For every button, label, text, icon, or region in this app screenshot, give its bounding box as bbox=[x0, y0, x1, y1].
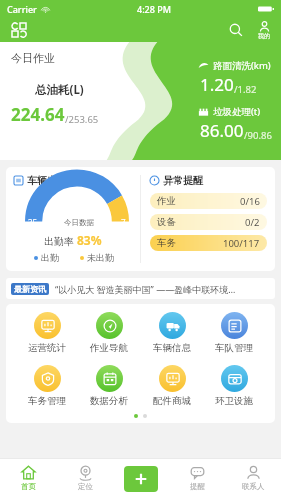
staticText: 提醒 bbox=[190, 482, 205, 491]
staticText: 车辆出勤 bbox=[27, 174, 67, 187]
staticText: 垃圾处理(t) bbox=[213, 105, 261, 118]
button[interactable]: 车务管理 bbox=[25, 364, 69, 408]
staticText: 未出勤 bbox=[87, 252, 114, 263]
staticText: 联系人 bbox=[242, 482, 265, 491]
staticText: 0/2 bbox=[245, 216, 260, 229]
button[interactable]: 作业导航 bbox=[87, 311, 131, 355]
staticText: 定位 bbox=[78, 482, 93, 491]
button[interactable]: 运营统计 bbox=[25, 311, 69, 355]
button[interactable]: Logo bbox=[9, 20, 29, 40]
staticText: 今日数据 bbox=[64, 218, 94, 227]
staticText: /1.82 bbox=[234, 83, 257, 96]
staticText: 7 bbox=[121, 217, 126, 228]
staticText: 配件商城 bbox=[153, 395, 191, 407]
staticText: 86.00 bbox=[200, 119, 244, 142]
button[interactable]: 首页 bbox=[0, 458, 57, 500]
staticText: 车辆信息 bbox=[153, 342, 191, 354]
staticText: “以小见大 智造美丽中国” ——盈峰中联环境… bbox=[55, 283, 236, 295]
staticText: 今日作业 bbox=[11, 51, 55, 65]
button[interactable]: 车队管理 bbox=[212, 311, 256, 355]
staticText: 环卫设施 bbox=[215, 395, 253, 407]
staticText: 设备 bbox=[157, 216, 176, 228]
staticText: 数据分析 bbox=[90, 395, 128, 407]
button[interactable]: 作业 bbox=[150, 193, 267, 209]
staticText: 首页 bbox=[21, 482, 36, 491]
button[interactable]: 提醒 bbox=[169, 458, 225, 500]
staticText: 4:28 PM bbox=[137, 3, 171, 15]
staticText: 异常提醒 bbox=[163, 174, 203, 187]
button[interactable]: 设备 bbox=[150, 214, 267, 230]
button[interactable]: 车务 bbox=[150, 235, 267, 251]
staticText: 0/16 bbox=[240, 195, 260, 208]
staticText: 224.64 bbox=[11, 103, 65, 126]
staticText: 1.20 bbox=[200, 73, 234, 96]
staticText: 出勤率 bbox=[44, 234, 77, 248]
button[interactable]: 联系人 bbox=[225, 458, 281, 500]
staticText: 我的 bbox=[258, 32, 270, 40]
staticText: 运营统计 bbox=[28, 342, 66, 354]
button[interactable]: 车辆信息 bbox=[150, 311, 194, 355]
button[interactable]: Add bbox=[124, 466, 158, 492]
staticText: 总油耗(L) bbox=[35, 82, 84, 98]
staticText: Carrier bbox=[7, 3, 37, 15]
button[interactable]: 环卫设施 bbox=[212, 364, 256, 408]
button[interactable]: 数据分析 bbox=[87, 364, 131, 408]
staticText: /253.65 bbox=[65, 113, 99, 126]
button[interactable]: My profile bbox=[256, 21, 272, 40]
staticText: 作业导航 bbox=[90, 342, 128, 354]
staticText: 车务管理 bbox=[28, 395, 66, 407]
staticText: 作业 bbox=[157, 195, 176, 207]
staticText: 出勤 bbox=[41, 252, 59, 263]
button[interactable]: Search bbox=[227, 21, 245, 39]
staticText: 100/117 bbox=[223, 237, 260, 250]
button[interactable]: 配件商城 bbox=[150, 364, 194, 408]
staticText: 35 bbox=[28, 217, 38, 228]
staticText: 车队管理 bbox=[215, 342, 253, 354]
staticText: 最新资讯 bbox=[14, 284, 46, 294]
staticText: 车务 bbox=[157, 237, 176, 249]
button[interactable]: 最新资讯 bbox=[6, 278, 275, 299]
staticText: 83% bbox=[77, 232, 102, 248]
button[interactable]: 定位 bbox=[57, 458, 113, 500]
staticText: /90.86 bbox=[244, 129, 272, 142]
staticText: 路面清洗(km) bbox=[213, 59, 271, 72]
